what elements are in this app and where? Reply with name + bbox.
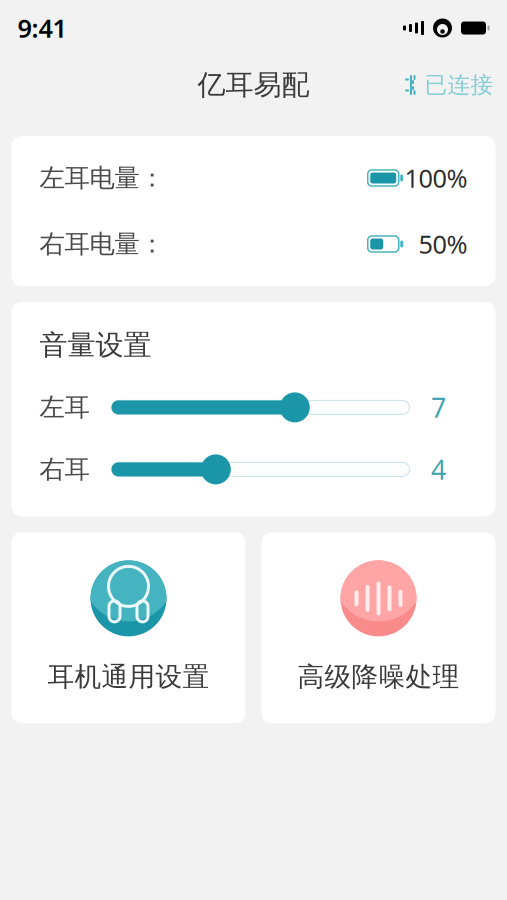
button[interactable]: 耳机通用设置 <box>11 532 245 723</box>
staticText: 右耳电量： <box>39 228 164 259</box>
staticText: 9:41 <box>17 11 66 45</box>
staticText: 音量设置 <box>39 328 151 362</box>
staticText: 耳机通用设置 <box>47 660 209 693</box>
staticText: 4 <box>431 452 446 487</box>
staticText: 高级降噪处理 <box>297 660 459 693</box>
staticText: 已连接 <box>424 71 493 99</box>
button[interactable]: 已连接 <box>399 63 497 107</box>
staticText: 左耳 <box>39 392 89 423</box>
staticText: 100% <box>404 161 467 195</box>
button[interactable]: 高级降噪处理 <box>261 532 495 723</box>
staticText: 右耳 <box>39 454 89 485</box>
staticText: 50% <box>418 227 467 261</box>
staticText: 7 <box>431 390 446 425</box>
staticText: 左耳电量： <box>39 162 164 193</box>
staticText: 亿耳易配 <box>197 68 309 102</box>
